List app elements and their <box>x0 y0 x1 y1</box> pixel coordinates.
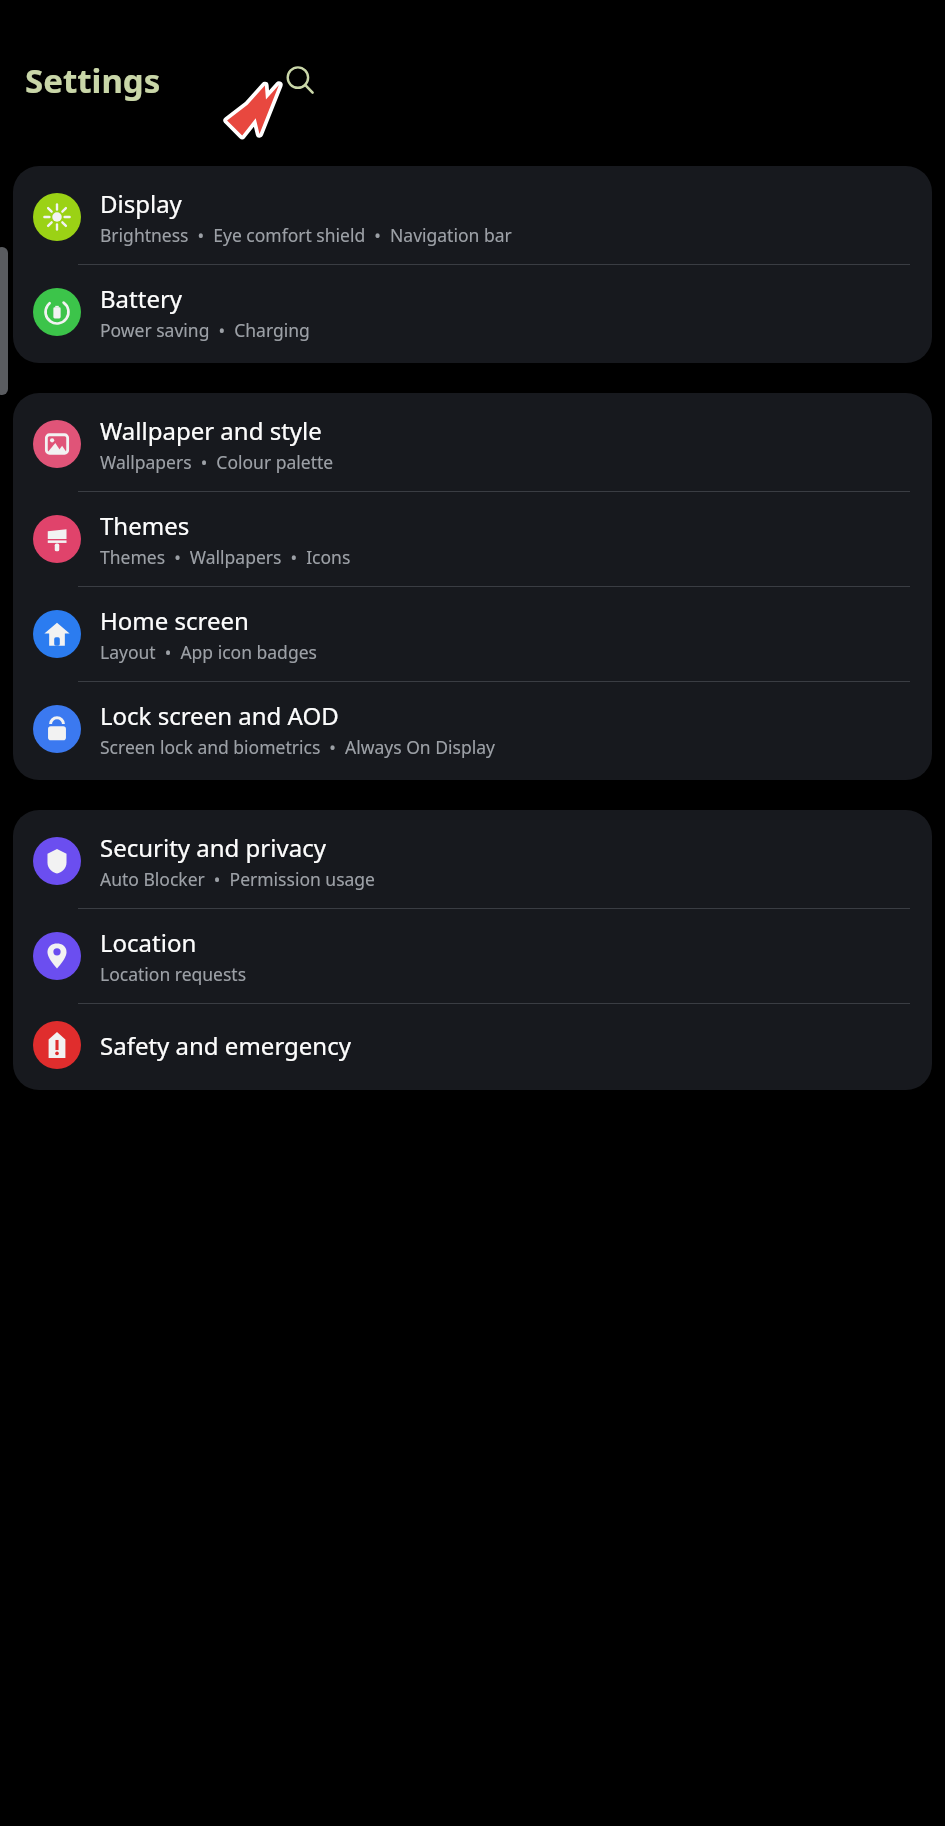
button[interactable]: Battery <box>13 265 932 359</box>
button[interactable]: Home screen <box>13 587 932 681</box>
staticText: Location requests <box>100 962 247 986</box>
button[interactable]: Location <box>13 909 932 1003</box>
button[interactable]: Wallpaper and style <box>13 397 932 491</box>
staticText: Safety and emergency <box>100 1029 351 1062</box>
staticText: Brightness • Eye comfort shield • Naviga… <box>100 223 512 247</box>
staticText: Settings <box>25 58 161 103</box>
staticText: Wallpaper and style <box>100 414 322 447</box>
staticText: Themes • Wallpapers • Icons <box>100 545 351 569</box>
staticText: Auto Blocker • Permission usage <box>100 867 375 891</box>
staticText: Power saving • Charging <box>100 318 310 342</box>
staticText: Lock screen and AOD <box>100 699 339 732</box>
button[interactable]: Themes <box>13 492 932 586</box>
staticText: Wallpapers • Colour palette <box>100 450 334 474</box>
staticText: Screen lock and biometrics • Always On D… <box>100 735 495 759</box>
button[interactable]: Safety and emergency <box>13 1004 932 1086</box>
staticText: Display <box>100 187 182 220</box>
other: Annotation arrow <box>226 84 280 136</box>
button[interactable]: Lock screen and AOD <box>13 682 932 776</box>
staticText: Home screen <box>100 604 249 637</box>
button[interactable]: Display <box>13 170 932 264</box>
staticText: Location <box>100 926 197 959</box>
button[interactable]: Search <box>272 52 328 108</box>
staticText: Security and privacy <box>100 831 326 864</box>
staticText: Themes <box>100 509 190 542</box>
staticText: Layout • App icon badges <box>100 640 317 664</box>
staticText: Battery <box>100 282 183 315</box>
button[interactable]: Security and privacy <box>13 814 932 908</box>
